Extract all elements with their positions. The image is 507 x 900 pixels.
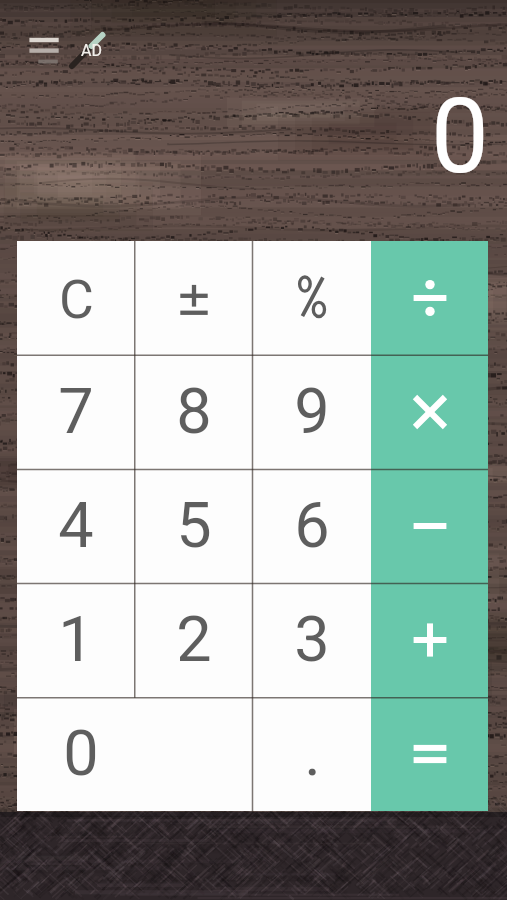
staticText: 1: [58, 603, 94, 677]
staticText: AD: [81, 41, 102, 60]
button[interactable]: 0: [17, 697, 253, 811]
staticText: .: [304, 717, 321, 791]
button[interactable]: .: [253, 697, 371, 811]
button[interactable]: Plus minus: [135, 241, 253, 355]
staticText: 7: [58, 375, 94, 449]
staticText: 0: [63, 717, 99, 791]
button[interactable]: Multiply: [371, 355, 488, 469]
button[interactable]: Equals: [371, 697, 488, 811]
button[interactable]: 5: [135, 469, 253, 583]
button[interactable]: Minus: [371, 469, 488, 583]
button[interactable]: 2: [135, 583, 253, 697]
button[interactable]: 4: [17, 469, 135, 583]
staticText: 2: [176, 603, 212, 677]
staticText: 0: [431, 76, 489, 197]
button[interactable]: Ad: [68, 30, 108, 72]
staticText: 8: [176, 375, 212, 449]
button[interactable]: Percent: [253, 241, 371, 355]
staticText: 3: [294, 603, 330, 677]
button[interactable]: Divide: [371, 241, 488, 355]
button[interactable]: Menu: [26, 32, 64, 68]
staticText: 9: [294, 375, 330, 449]
button[interactable]: 8: [135, 355, 253, 469]
staticText: C: [59, 268, 94, 331]
staticText: 6: [294, 489, 330, 563]
button[interactable]: 6: [253, 469, 371, 583]
button[interactable]: 7: [17, 355, 135, 469]
button[interactable]: 9: [253, 355, 371, 469]
button[interactable]: 1: [17, 583, 135, 697]
button[interactable]: C: [17, 241, 135, 355]
staticText: 4: [58, 489, 94, 563]
button[interactable]: 3: [253, 583, 371, 697]
button[interactable]: Plus: [371, 583, 488, 697]
staticText: 5: [176, 489, 212, 563]
